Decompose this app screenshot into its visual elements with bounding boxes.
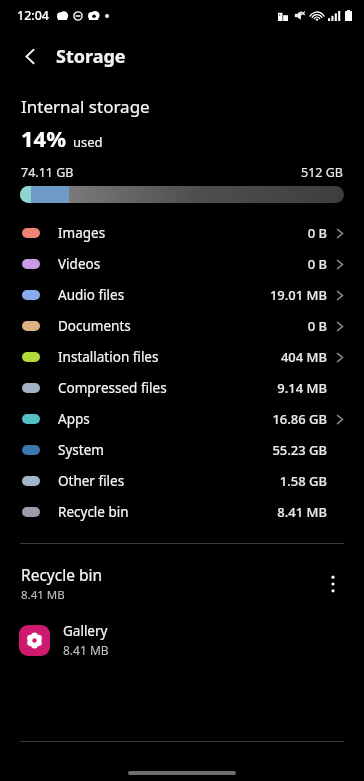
- staticText: Videos: [58, 255, 101, 273]
- staticText: Audio files: [58, 286, 125, 304]
- staticText: Other files: [58, 472, 125, 490]
- button[interactable]: More options: [316, 567, 350, 601]
- button[interactable]: Gallery: [0, 618, 364, 662]
- button[interactable]: Installation files: [0, 341, 364, 372]
- staticText: Recycle bin: [58, 503, 129, 521]
- button[interactable]: Other files: [0, 465, 364, 496]
- button[interactable]: Apps: [0, 403, 364, 434]
- staticText: 14%: [21, 123, 67, 153]
- button[interactable]: Images: [0, 217, 364, 248]
- button[interactable]: Back: [10, 36, 50, 76]
- staticText: 8.41 MB: [277, 503, 327, 521]
- staticText: Installation files: [58, 348, 159, 366]
- button[interactable]: Videos: [0, 248, 364, 279]
- staticText: System: [58, 441, 104, 459]
- staticText: 0 B: [307, 224, 327, 242]
- staticText: 1.58 GB: [279, 472, 327, 490]
- staticText: Recycle bin: [21, 564, 103, 585]
- button[interactable]: Recycle bin: [0, 496, 364, 527]
- staticText: 19.01 MB: [269, 286, 327, 304]
- staticText: Storage: [56, 44, 126, 69]
- staticText: Internal storage: [21, 95, 150, 118]
- staticText: Documents: [58, 317, 131, 335]
- button[interactable]: System: [0, 434, 364, 465]
- staticText: Apps: [58, 410, 90, 428]
- staticText: 8.41 MB: [63, 642, 109, 658]
- staticText: 16.86 GB: [272, 410, 327, 428]
- staticText: 0 B: [307, 255, 327, 273]
- staticText: used: [73, 133, 103, 151]
- staticText: Images: [58, 224, 106, 242]
- staticText: 12:04: [17, 7, 50, 24]
- staticText: 8.41 MB: [21, 587, 65, 603]
- staticText: 55.23 GB: [272, 441, 327, 459]
- staticText: 404 MB: [280, 348, 327, 366]
- button[interactable]: Documents: [0, 310, 364, 341]
- staticText: Compressed files: [58, 379, 167, 397]
- staticText: 9.14 MB: [277, 379, 327, 397]
- staticText: 512 GB: [301, 164, 343, 181]
- staticText: 0 B: [307, 317, 327, 335]
- button[interactable]: Compressed files: [0, 372, 364, 403]
- staticText: Gallery: [63, 622, 108, 640]
- staticText: 74.11 GB: [21, 164, 74, 181]
- button[interactable]: Audio files: [0, 279, 364, 310]
